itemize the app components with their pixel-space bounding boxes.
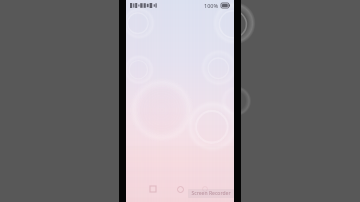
staticText: Screen Recorder — [191, 190, 231, 197]
button[interactable]: Home — [173, 182, 187, 196]
button[interactable]: Recent apps — [146, 182, 160, 196]
staticText: 100% — [204, 2, 219, 9]
button[interactable]: Back — [198, 182, 212, 196]
